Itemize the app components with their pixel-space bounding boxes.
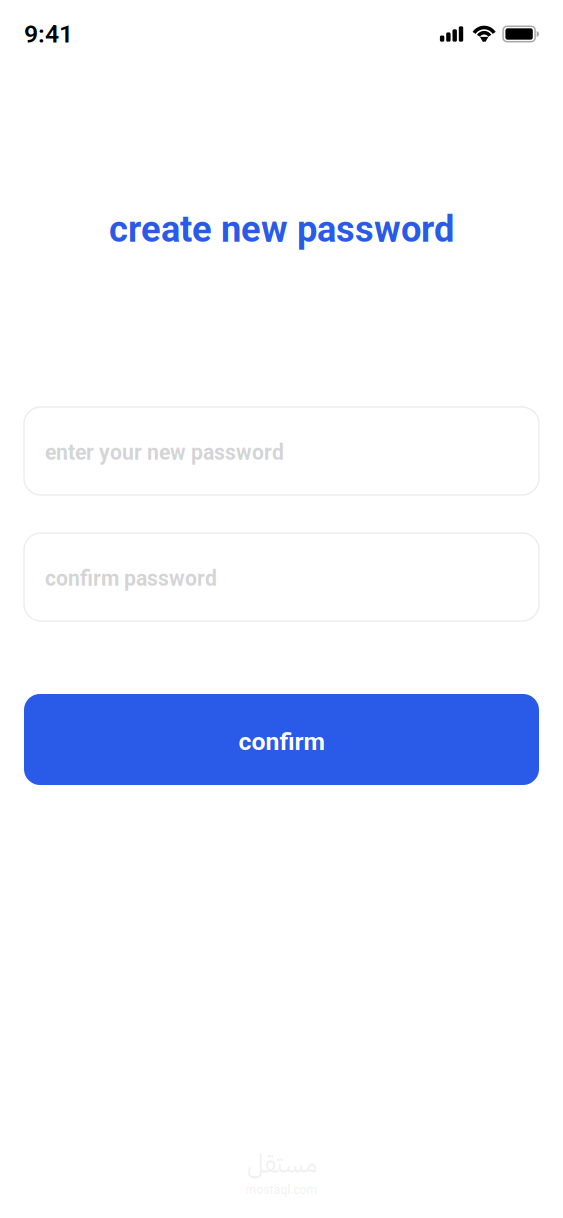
- button[interactable]: enter your new password: [24, 407, 539, 495]
- staticText: create new password: [109, 208, 454, 250]
- staticText: مستقل: [246, 1145, 316, 1183]
- staticText: 9:41: [24, 19, 73, 49]
- staticText: mostaql.com: [245, 1183, 317, 1197]
- staticText: enter your new password: [45, 440, 284, 465]
- staticText: confirm password: [45, 566, 217, 591]
- button[interactable]: confirm: [24, 694, 539, 785]
- button[interactable]: confirm password: [24, 533, 539, 621]
- staticText: confirm: [238, 727, 324, 756]
